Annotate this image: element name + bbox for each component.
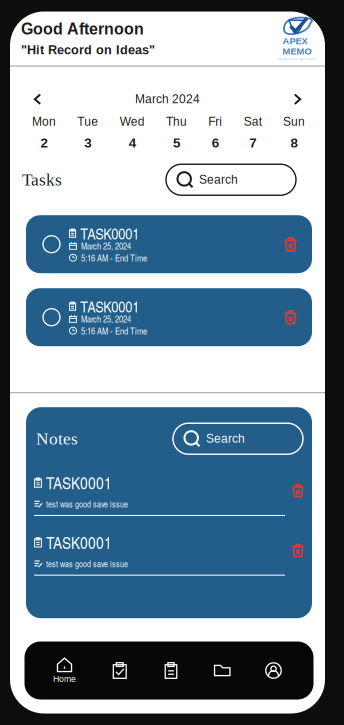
staticText: Sat: [244, 115, 262, 128]
button[interactable]: Files: [202, 647, 242, 693]
staticText: Home: [53, 674, 76, 684]
staticText: 5:16 AM - End Time: [81, 251, 147, 264]
staticText: TASK0001: [80, 296, 139, 317]
button[interactable]: Next month: [294, 94, 301, 105]
staticText: TASK0001: [46, 471, 112, 494]
staticText: "Hit Record on Ideas": [21, 43, 155, 57]
button[interactable]: Delete note: [292, 543, 304, 557]
button[interactable]: Profile: [253, 647, 293, 693]
staticText: Tasks: [22, 170, 62, 189]
staticText: transform into visual sense: [278, 57, 316, 61]
staticText: Search: [199, 173, 238, 186]
button[interactable]: Sun: [283, 115, 305, 150]
staticText: 5: [173, 135, 180, 150]
staticText: Thu: [166, 115, 187, 128]
staticText: March 25, 2024: [81, 239, 131, 252]
staticText: March 2024: [135, 92, 200, 106]
staticText: 8: [290, 135, 297, 150]
staticText: TASK0001: [46, 531, 112, 554]
button[interactable]: TASK0001: [26, 288, 312, 346]
button[interactable]: Wed: [120, 115, 145, 150]
staticText: Good Afternoon: [21, 20, 144, 38]
staticText: 5:16 AM - End Time: [81, 324, 147, 337]
staticText: Wed: [120, 115, 145, 128]
button[interactable]: Search: [166, 164, 296, 195]
staticText: 3: [84, 135, 91, 150]
staticText: March 25, 2024: [81, 312, 131, 325]
staticText: test was good save issue: [46, 558, 128, 570]
button[interactable]: Sat: [244, 115, 262, 150]
staticText: 6: [212, 135, 219, 150]
staticText: Notes: [36, 429, 78, 448]
staticText: test was good save issue: [46, 498, 128, 510]
staticText: Mon: [32, 115, 56, 128]
button[interactable]: Thu: [166, 115, 187, 150]
button[interactable]: Previous month: [34, 94, 41, 105]
staticText: Tue: [77, 115, 98, 128]
staticText: Sun: [283, 115, 305, 128]
staticText: 7: [249, 135, 256, 150]
button[interactable]: Notes: [151, 647, 191, 693]
button[interactable]: Search: [173, 423, 303, 454]
staticText: TASK0001: [80, 223, 139, 244]
staticText: 4: [129, 135, 136, 150]
staticText: Search: [206, 432, 245, 445]
staticText: APEX MEMO: [282, 36, 311, 57]
button[interactable]: Tue: [77, 115, 98, 150]
staticText: Fri: [208, 115, 222, 128]
button[interactable]: Fri: [208, 115, 222, 150]
button[interactable]: Tasks: [100, 647, 140, 693]
button[interactable]: TASK0001: [26, 215, 312, 273]
button[interactable]: Mon: [32, 115, 56, 150]
staticText: 2: [40, 135, 47, 150]
button[interactable]: Delete note: [292, 484, 304, 498]
button[interactable]: Home: [40, 647, 88, 693]
